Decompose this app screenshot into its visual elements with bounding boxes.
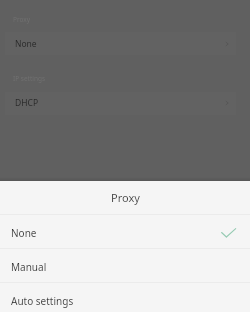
other: Expand DHCP options [224,100,230,106]
button[interactable]: Auto settings [0,284,250,312]
staticText: Manual [11,260,47,274]
button[interactable]: None [0,216,250,249]
staticText: None [15,38,37,50]
staticText: Auto settings [11,294,74,308]
staticText: None [11,226,37,240]
button[interactable]: None [0,32,250,55]
button[interactable]: DHCP [0,91,250,114]
staticText: IP settings [13,74,46,83]
other: Expand None options [224,41,230,47]
button[interactable]: Manual [0,250,250,283]
staticText: Proxy [111,190,140,205]
staticText: DHCP [15,97,39,109]
staticText: Proxy [13,15,31,24]
